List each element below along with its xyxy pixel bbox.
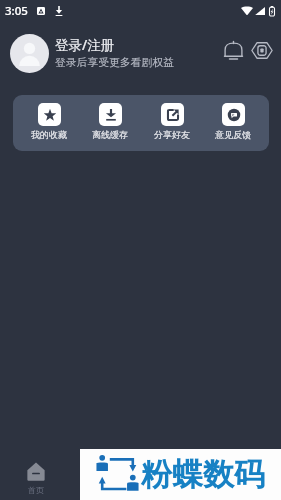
staticText: 登录/注册 bbox=[55, 36, 115, 54]
staticText: 粉蝶数码 bbox=[141, 455, 265, 494]
staticText: 分享好友 bbox=[154, 129, 190, 140]
button[interactable]: 分类 bbox=[71, 456, 141, 500]
staticText: 首页 bbox=[28, 485, 44, 495]
button[interactable]: 排行 bbox=[141, 456, 211, 500]
button[interactable]: Settings bbox=[249, 35, 275, 65]
button[interactable]: 我的收藏 bbox=[23, 103, 75, 140]
staticText: 分类 bbox=[98, 485, 114, 495]
staticText: 登录后享受更多看剧权益 bbox=[55, 56, 174, 70]
staticText: 意见反馈 bbox=[215, 129, 251, 140]
button[interactable]: 离线缓存 bbox=[84, 103, 136, 140]
button[interactable]: Notifications bbox=[220, 35, 246, 65]
staticText: 我的收藏 bbox=[31, 129, 67, 140]
button[interactable]: 我的 bbox=[211, 456, 281, 500]
button[interactable]: 分享好友 bbox=[146, 103, 198, 140]
staticText: 3:05 bbox=[5, 3, 28, 19]
staticText: 离线缓存 bbox=[92, 129, 128, 140]
button[interactable]: 意见反馈 bbox=[207, 103, 259, 140]
button[interactable]: Avatar bbox=[10, 34, 49, 73]
button[interactable]: 首页 bbox=[0, 456, 71, 500]
staticText: 排行 bbox=[168, 485, 184, 495]
